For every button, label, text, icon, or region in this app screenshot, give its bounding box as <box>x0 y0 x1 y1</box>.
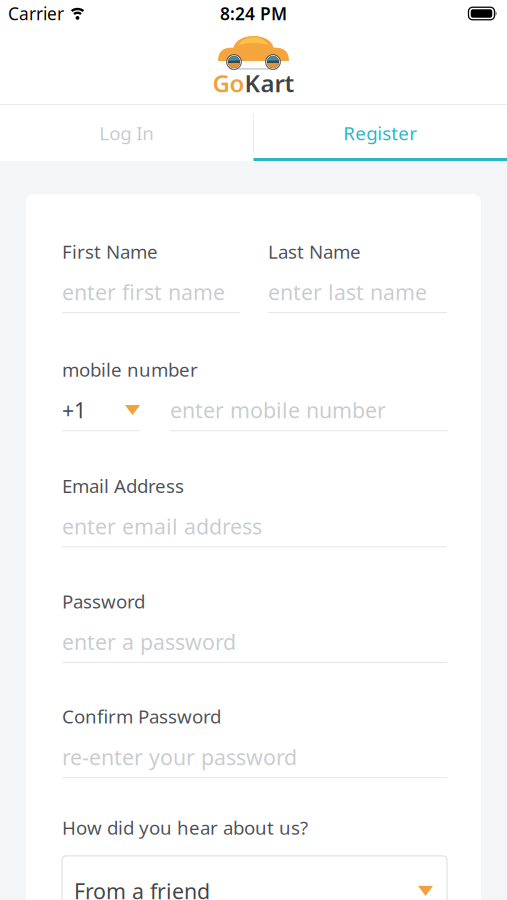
staticText: First Name <box>62 239 158 264</box>
button[interactable]: From a friend <box>62 856 447 900</box>
staticText: How did you hear about us? <box>62 815 308 840</box>
staticText: Go <box>212 67 244 99</box>
staticText: enter mobile number <box>170 396 386 424</box>
staticText: enter a password <box>62 628 236 656</box>
staticText: enter email address <box>62 512 262 540</box>
staticText: enter first name <box>62 278 225 306</box>
button[interactable]: Register <box>253 105 507 161</box>
staticText: Kart <box>244 67 294 99</box>
staticText: From a friend <box>74 877 210 900</box>
staticText: Email Address <box>62 473 184 498</box>
staticText: +1 <box>62 396 86 424</box>
staticText: mobile number <box>62 357 198 382</box>
button[interactable]: Log In <box>0 105 253 161</box>
button[interactable]: Select country code <box>125 405 140 415</box>
staticText: Register <box>343 121 417 145</box>
staticText: Log In <box>99 121 154 145</box>
staticText: Last Name <box>268 239 361 264</box>
staticText: Password <box>62 589 145 614</box>
staticText: enter last name <box>268 278 427 306</box>
staticText: 8:24 PM <box>220 2 287 25</box>
staticText: re-enter your password <box>62 743 297 771</box>
staticText: Confirm Password <box>62 704 221 729</box>
staticText: Carrier <box>8 2 64 25</box>
